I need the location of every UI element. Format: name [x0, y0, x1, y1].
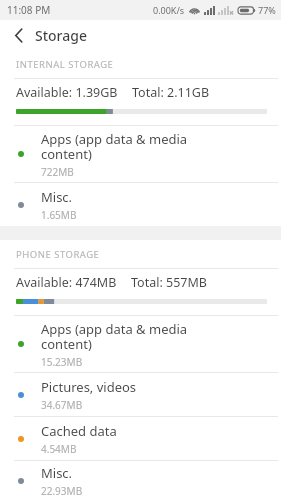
staticText: Available: 474MB — [16, 274, 117, 291]
staticText: 15.23MB — [41, 355, 83, 369]
button[interactable]: Cached data — [0, 417, 281, 460]
button[interactable]: Apps (app data & media content) — [0, 316, 281, 372]
staticText: 4.54MB — [41, 442, 77, 456]
button[interactable]: Misc. — [0, 461, 281, 500]
staticText: PHONE STORAGE — [16, 248, 100, 261]
staticText: Misc. — [41, 464, 73, 482]
staticText: Apps (app data & media content) — [41, 320, 188, 353]
staticText: 22.93MB — [41, 484, 83, 498]
staticText: 722MB — [41, 165, 74, 179]
staticText: Total: 557MB — [131, 274, 207, 291]
button[interactable]: Misc. — [0, 183, 281, 226]
button[interactable]: Apps (app data & media content) — [0, 126, 281, 182]
staticText: 77% — [258, 4, 276, 16]
staticText: Misc. — [41, 188, 73, 206]
staticText: Cached data — [41, 422, 117, 440]
staticText: 34.67MB — [41, 398, 83, 412]
staticText: Available: 1.39GB — [16, 84, 118, 101]
staticText: Storage — [35, 26, 87, 45]
staticText: Pictures, videos — [41, 378, 137, 396]
button[interactable]: Pictures, videos — [0, 373, 281, 416]
staticText: 11:08 PM — [7, 3, 51, 17]
button[interactable]: Back — [5, 22, 32, 49]
staticText: 0.00K/s — [153, 4, 185, 16]
staticText: INTERNAL STORAGE — [16, 58, 114, 71]
staticText: Apps (app data & media content) — [41, 130, 188, 163]
staticText: Total: 2.11GB — [132, 84, 210, 101]
staticText: 1.65MB — [41, 208, 77, 222]
